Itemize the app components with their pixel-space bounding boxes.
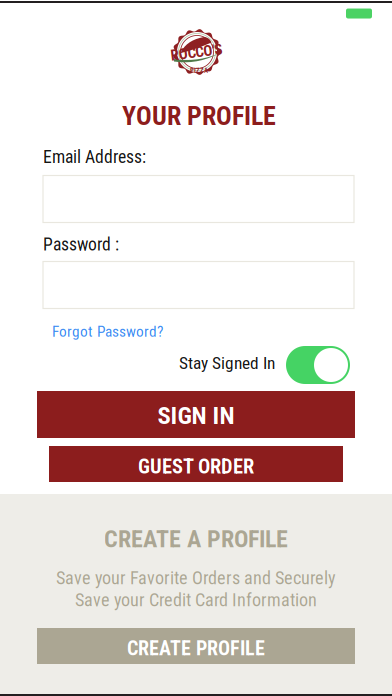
staticText: CREATE A PROFILE: [104, 525, 288, 553]
staticText: SIGN IN: [157, 401, 234, 430]
button[interactable]: Stay Signed In: [286, 346, 350, 384]
staticText: ROCCO'S: [170, 44, 222, 61]
button[interactable]: GUEST ORDER: [49, 446, 343, 482]
staticText: CREATE PROFILE: [127, 637, 265, 660]
staticText: YOUR PROFILE: [122, 101, 276, 131]
button[interactable]: CREATE PROFILE: [37, 628, 355, 664]
staticText: Save your Favorite Orders and Securely: [56, 567, 336, 589]
staticText: Save your Credit Card Information: [75, 589, 317, 611]
staticText: Forgot Password?: [52, 322, 163, 340]
staticText: PIZZA: [190, 67, 208, 74]
staticText: Stay Signed In: [179, 353, 275, 373]
button[interactable]: Forgot Password?: [52, 320, 182, 342]
staticText: GUEST ORDER: [138, 454, 254, 478]
staticText: Email Address:: [43, 147, 146, 167]
button[interactable]: SIGN IN: [37, 391, 355, 438]
staticText: Password :: [43, 234, 119, 255]
